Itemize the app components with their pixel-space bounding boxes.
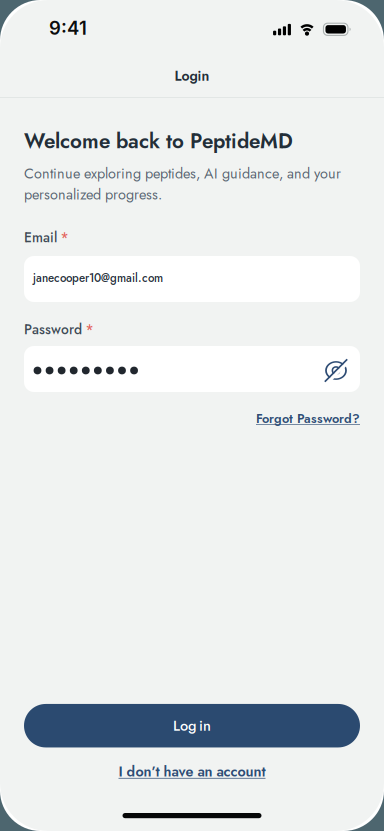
button[interactable]: Log [24,704,360,747]
staticText: Continue exploring peptides, AI guidance… [24,163,341,205]
button[interactable]: Show password [325,359,347,381]
staticText: * [85,319,93,339]
staticText: Log [173,715,196,736]
staticText: janecooper10@gmail.com [33,270,163,286]
button[interactable]: Forgot Password? [256,409,360,428]
staticText: Login [174,66,209,86]
button[interactable]: janecooper10@gmail.com [24,256,360,302]
staticText: I don’t have an account [118,761,265,782]
button[interactable]: I don’t have an account [118,761,265,782]
staticText: Password [24,319,82,339]
staticText: 9:41 [49,17,87,39]
staticText: Forgot Password? [256,409,360,428]
staticText: in [199,715,211,736]
staticText: * [60,227,68,247]
button[interactable]: Password [24,346,360,392]
staticText: Welcome back to PeptideMD [24,126,293,156]
staticText: Email [24,227,57,247]
